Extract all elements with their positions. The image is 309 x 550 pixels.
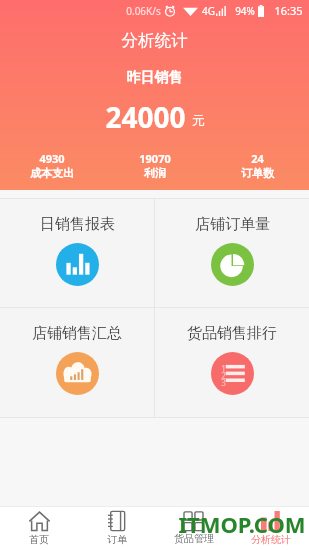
staticText: 首页	[29, 533, 49, 546]
staticText: 16:35	[274, 3, 303, 18]
staticText: 订单	[107, 533, 127, 546]
button[interactable]: 日销售报表	[0, 199, 154, 307]
staticText: 昨日销售	[0, 69, 309, 87]
staticText: 94%	[235, 4, 255, 18]
staticText: 货品管理	[174, 532, 214, 545]
button[interactable]: 店铺订单量	[155, 199, 309, 307]
staticText: 4G	[202, 4, 215, 18]
staticText: 24	[251, 151, 264, 166]
button[interactable]: 店铺销售汇总	[0, 308, 154, 417]
button[interactable]: 订单	[78, 507, 155, 550]
staticText: 4930	[39, 151, 65, 166]
staticText: 成本支出	[30, 166, 74, 180]
staticText: ITMOP.COM	[178, 509, 306, 539]
staticText: 日销售报表	[40, 215, 115, 234]
button[interactable]: 分析统计	[232, 507, 309, 550]
staticText: 1	[221, 363, 226, 374]
button[interactable]: 货品销售排行	[155, 308, 309, 417]
staticText: 0.06K/s	[126, 4, 161, 18]
button[interactable]: 首页	[0, 507, 78, 550]
staticText: 分析统计	[251, 533, 291, 546]
button[interactable]: 货品管理	[155, 507, 232, 550]
staticText: 货品销售排行	[187, 324, 277, 343]
staticText: 24000	[105, 98, 186, 136]
staticText: 店铺销售汇总	[32, 324, 122, 343]
staticText: 订单数	[241, 166, 274, 180]
staticText: 元	[192, 112, 205, 128]
staticText: 分析统计	[0, 30, 309, 51]
staticText: 店铺订单量	[195, 215, 270, 234]
staticText: 利润	[144, 166, 166, 180]
staticText: 3	[221, 377, 226, 388]
staticText: 19070	[139, 151, 171, 166]
staticText: 2	[221, 370, 226, 381]
